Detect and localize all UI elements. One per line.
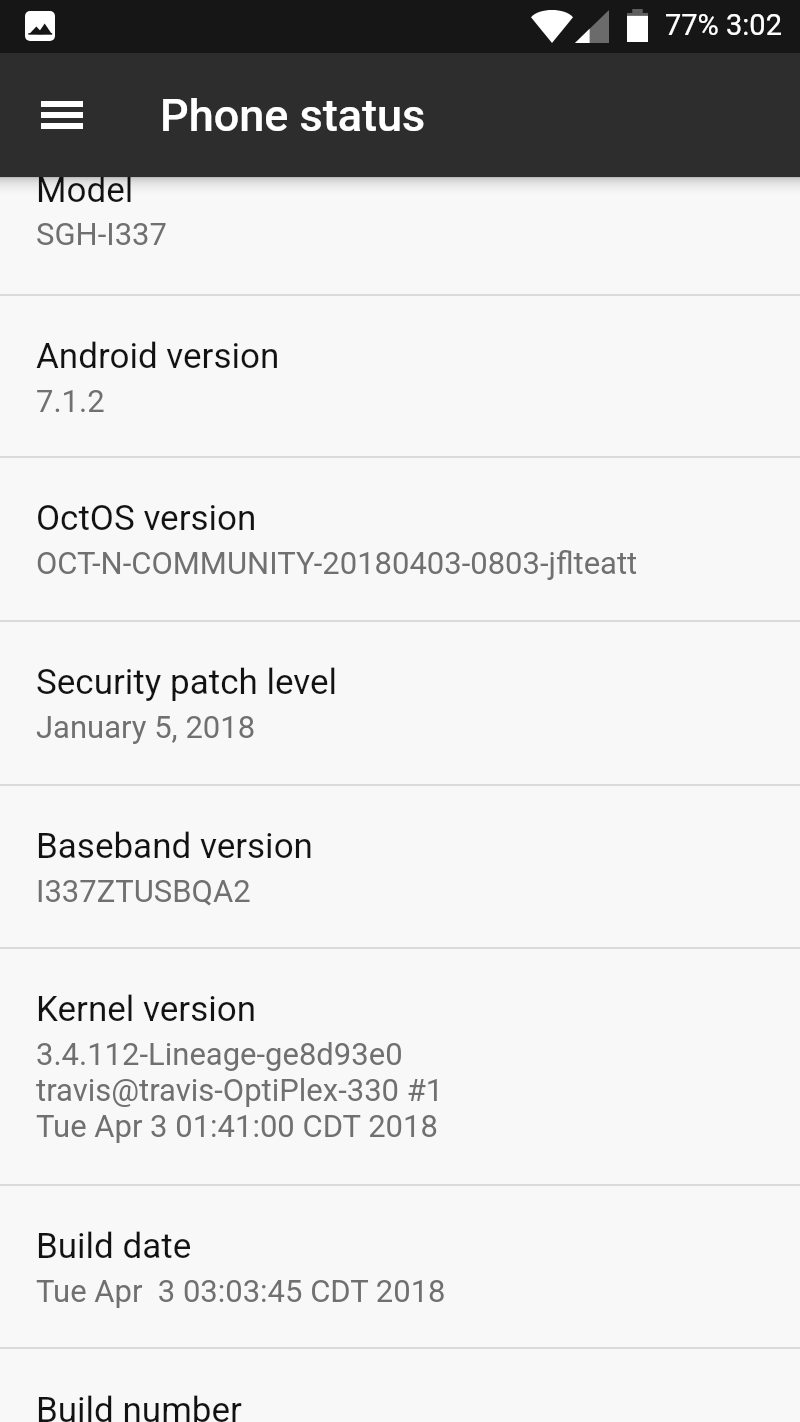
staticText: Android version: [36, 336, 280, 377]
button[interactable]: Build number: [0, 1349, 800, 1422]
button[interactable]: Android version: [0, 296, 800, 456]
staticText: Build date: [36, 1226, 192, 1267]
button[interactable]: Open navigation menu: [20, 73, 104, 157]
staticText: Security patch level: [36, 662, 338, 703]
staticText: Tue Apr 3 03:03:45 CDT 2018: [36, 1273, 446, 1309]
button[interactable]: Kernel version: [0, 949, 800, 1184]
staticText: 7.1.2: [36, 383, 105, 419]
staticText: OCT-N-COMMUNITY-20180403-0803-jflteatt: [36, 545, 638, 581]
button[interactable]: OctOS version: [0, 458, 800, 620]
staticText: OctOS version: [36, 498, 257, 539]
staticText: SGH-I337: [36, 216, 167, 252]
staticText: Phone status: [160, 89, 426, 142]
staticText: Kernel version: [36, 989, 257, 1030]
button[interactable]: Build date: [0, 1186, 800, 1347]
button[interactable]: Security patch level: [0, 622, 800, 784]
staticText: Build number: [36, 1390, 242, 1422]
button[interactable]: Baseband version: [0, 786, 800, 947]
staticText: Baseband version: [36, 826, 313, 867]
staticText: January 5, 2018: [36, 709, 256, 745]
staticText: 77% 3:02: [665, 8, 782, 42]
staticText: Tue Apr 3 01:41:00 CDT 2018: [36, 1108, 438, 1144]
staticText: Model: [36, 170, 134, 211]
staticText: 3.4.112-Lineage-ge8d93e0: [36, 1036, 403, 1072]
button[interactable]: Model: [0, 177, 800, 294]
staticText: I337ZTUSBQA2: [36, 873, 251, 909]
staticText: travis@travis-OptiPlex-330 #1: [36, 1072, 444, 1108]
